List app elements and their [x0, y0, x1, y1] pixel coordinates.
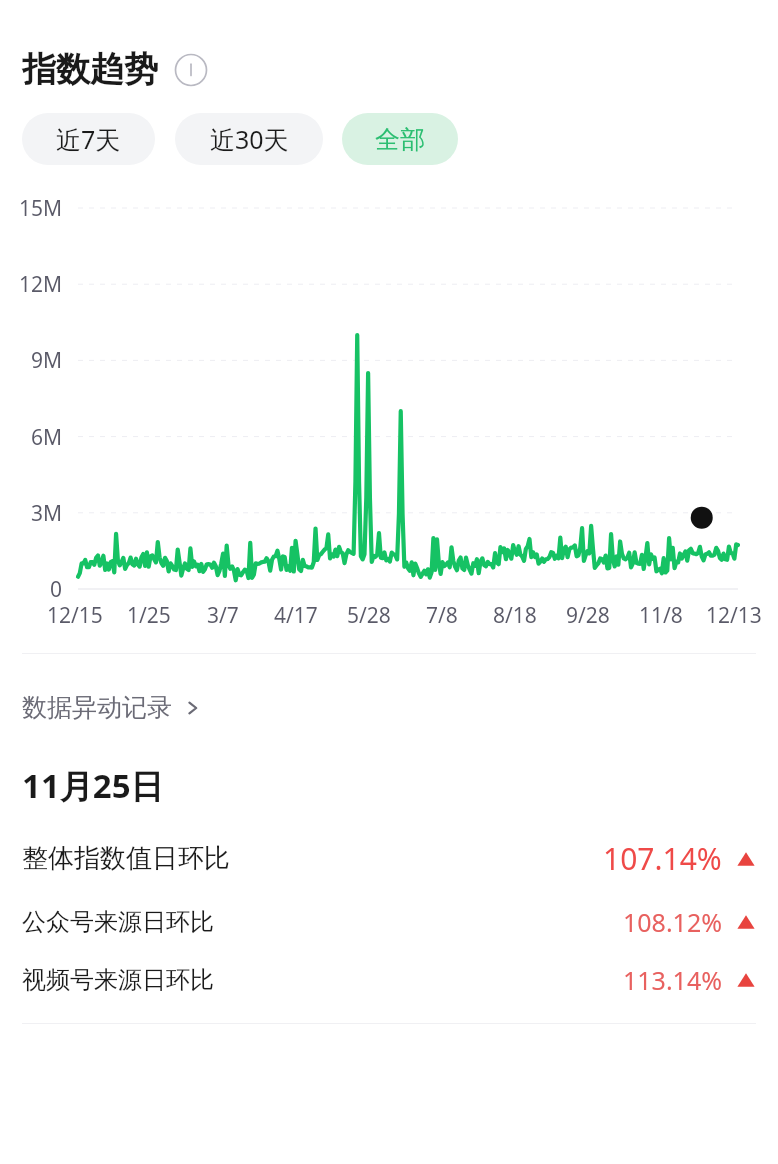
staticText: 3/7	[207, 601, 239, 630]
staticText: 7/8	[426, 601, 458, 630]
staticText: 11月25日	[22, 763, 164, 808]
staticText: 1/25	[127, 601, 171, 630]
staticText: 12M	[0, 270, 62, 299]
staticText: 9/28	[566, 601, 610, 630]
staticText: 12/13	[706, 601, 762, 630]
staticText: 近7天	[56, 122, 121, 156]
button[interactable]: 近7天	[22, 113, 155, 165]
button[interactable]: 公众号来源日环比	[0, 905, 778, 939]
button[interactable]: 全部	[342, 113, 458, 165]
staticText: 107.14%	[603, 838, 722, 879]
button[interactable]: 数据异动记录	[0, 654, 778, 733]
staticText: 5/28	[347, 601, 391, 630]
staticText: 0	[0, 575, 62, 604]
staticText: 8/18	[493, 601, 537, 630]
staticText: 11/8	[639, 601, 683, 630]
button[interactable]: 视频号来源日环比	[0, 963, 778, 997]
staticText: 15M	[0, 194, 62, 223]
staticText: 视频号来源日环比	[22, 965, 214, 995]
staticText: 公众号来源日环比	[22, 907, 214, 937]
staticText: 6M	[0, 423, 62, 452]
staticText: 113.14%	[623, 963, 722, 997]
staticText: 3M	[0, 499, 62, 528]
button[interactable]: 整体指数值日环比	[0, 838, 778, 879]
staticText: 近30天	[210, 122, 289, 156]
staticText: 全部	[375, 124, 425, 155]
staticText: 12/15	[47, 601, 103, 630]
button[interactable]: 说明	[174, 53, 208, 87]
staticText: 整体指数值日环比	[22, 842, 230, 875]
staticText: 指数趋势	[22, 48, 158, 91]
button[interactable]: 近30天	[175, 113, 323, 165]
staticText: 数据异动记录	[22, 692, 172, 723]
staticText: 9M	[0, 346, 62, 375]
staticText: 108.12%	[623, 905, 722, 939]
staticText: 4/17	[274, 601, 318, 630]
